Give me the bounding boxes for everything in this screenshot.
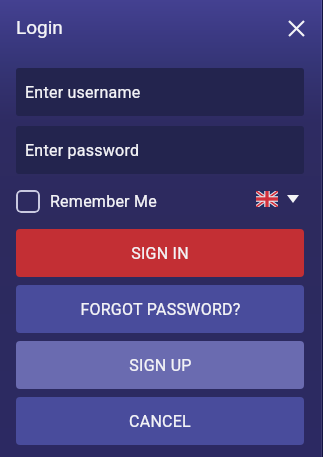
button[interactable]: FORGOT PASSWORD? [16, 285, 304, 333]
staticText: SIGN IN [131, 244, 189, 263]
button[interactable]: Enter password [16, 126, 304, 174]
staticText: CANCEL [129, 412, 191, 431]
button[interactable]: Enter username [16, 68, 304, 116]
button[interactable]: Select language [256, 187, 299, 210]
button[interactable]: SIGN IN [16, 229, 304, 277]
staticText: Enter password [25, 141, 140, 160]
staticText: Remember Me [50, 192, 157, 211]
button[interactable]: Close [281, 13, 311, 43]
staticText: SIGN UP [129, 356, 192, 375]
staticText: Enter username [25, 83, 141, 102]
button[interactable]: Remember Me [16, 190, 157, 213]
button[interactable]: CANCEL [16, 397, 304, 445]
staticText: FORGOT PASSWORD? [80, 300, 241, 319]
button[interactable]: SIGN UP [16, 341, 304, 389]
staticText: Login [16, 16, 63, 38]
